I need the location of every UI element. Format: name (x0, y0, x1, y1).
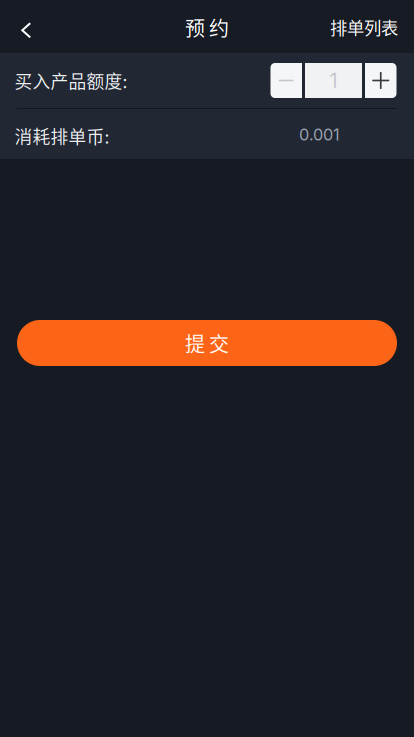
staticText: 买入产品额度: (14, 68, 127, 93)
staticText: 1 (329, 68, 337, 93)
button[interactable]: 提 交 (17, 320, 397, 366)
button[interactable]: Decrease amount (270, 63, 302, 98)
staticText: 0.001 (299, 125, 340, 144)
staticText: 消耗排单币: (14, 123, 109, 149)
staticText: 预 约 (185, 13, 229, 42)
button[interactable]: Back (0, 0, 52, 53)
button[interactable]: 排单列表 (330, 0, 414, 53)
button[interactable]: 1 (305, 63, 362, 98)
staticText: 提 交 (185, 328, 229, 357)
button[interactable]: Increase amount (365, 63, 396, 98)
staticText: 排单列表 (330, 14, 398, 40)
